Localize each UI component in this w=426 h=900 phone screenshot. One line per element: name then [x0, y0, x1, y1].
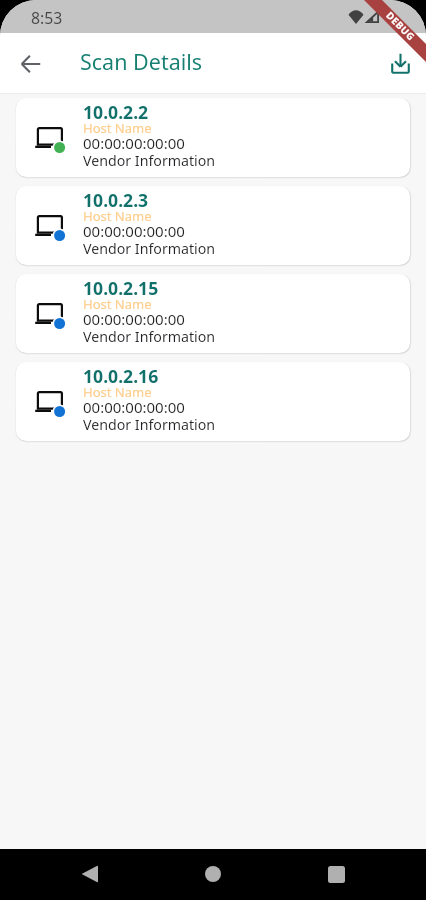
staticText: Host Name	[83, 207, 152, 225]
staticText: Scan Details	[80, 47, 203, 76]
button[interactable]: Recents	[312, 850, 360, 898]
staticText: 10.0.2.15	[83, 276, 159, 300]
staticText: DEBUG	[383, 9, 418, 44]
staticText: Host Name	[83, 295, 152, 313]
staticText: 8:53	[31, 7, 63, 29]
staticText: Host Name	[83, 383, 152, 401]
staticText: 00:00:00:00:00	[83, 397, 185, 417]
button[interactable]: 10.0.2.2	[16, 98, 410, 177]
button[interactable]: Back	[65, 850, 113, 898]
button[interactable]: Home	[189, 850, 237, 898]
staticText: 00:00:00:00:00	[83, 133, 185, 153]
staticText: 10.0.2.2	[83, 100, 149, 124]
button[interactable]: 10.0.2.15	[16, 274, 410, 353]
button[interactable]: 10.0.2.16	[16, 362, 410, 441]
button[interactable]: Download	[376, 39, 424, 87]
staticText: 00:00:00:00:00	[83, 309, 185, 329]
staticText: 10.0.2.3	[83, 188, 149, 212]
button[interactable]: Back	[6, 39, 55, 88]
staticText: 10.0.2.16	[83, 364, 159, 388]
button[interactable]: Scan Details	[80, 47, 203, 76]
staticText: Vendor Information	[83, 151, 216, 170]
button[interactable]: 10.0.2.3	[16, 186, 410, 265]
staticText: 00:00:00:00:00	[83, 221, 185, 241]
staticText: Vendor Information	[83, 239, 216, 258]
staticText: Vendor Information	[83, 415, 216, 434]
staticText: Host Name	[83, 119, 152, 137]
staticText: Vendor Information	[83, 327, 216, 346]
